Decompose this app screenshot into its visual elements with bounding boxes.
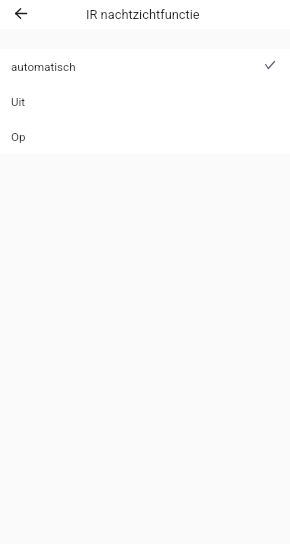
staticText: Op xyxy=(11,130,26,144)
button[interactable]: Back xyxy=(7,0,35,27)
staticText: automatisch xyxy=(11,60,76,74)
button[interactable]: Uit xyxy=(0,84,290,119)
button[interactable]: Op xyxy=(0,119,290,154)
staticText: IR nachtzichtfunctie xyxy=(86,7,200,22)
button[interactable]: automatisch xyxy=(0,49,290,84)
staticText: Uit xyxy=(11,95,26,109)
